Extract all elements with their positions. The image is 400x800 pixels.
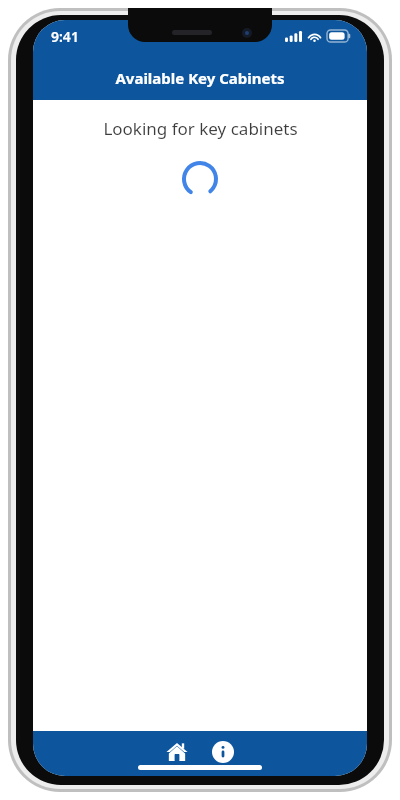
staticText: 9:41 [51,27,79,46]
staticText: Looking for key cabinets [103,117,298,140]
staticText: Available Key Cabinets [115,68,285,88]
button[interactable]: Information [206,735,240,769]
button[interactable]: Home [160,735,194,769]
